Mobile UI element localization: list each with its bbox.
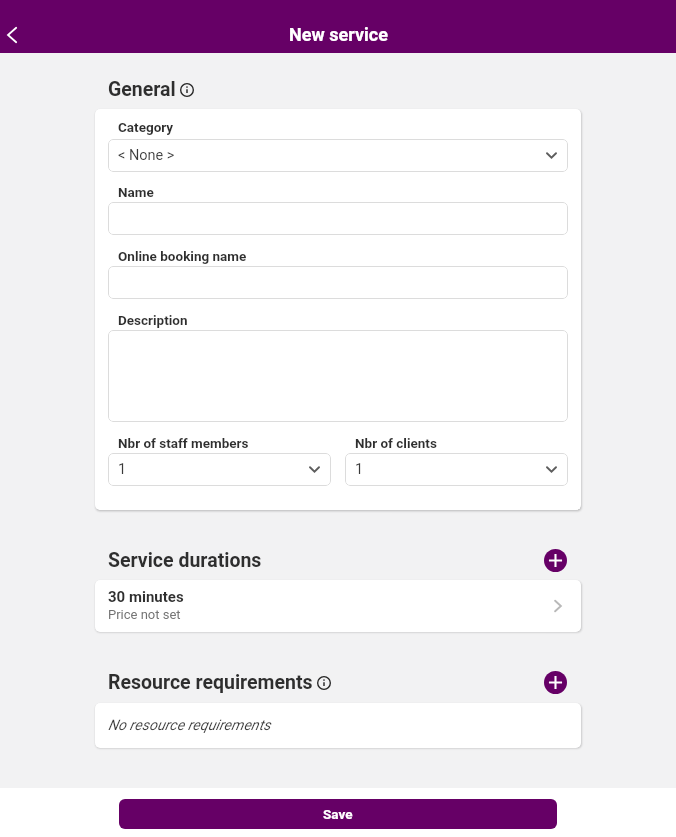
staticText: No resource requirements xyxy=(108,717,271,734)
button[interactable]: Add resource requirement xyxy=(544,671,567,694)
staticText: Description xyxy=(118,312,188,328)
staticText: 30 minutes xyxy=(108,588,184,606)
staticText: < None > xyxy=(118,147,175,164)
button[interactable]: 1 xyxy=(108,453,331,486)
staticText: Name xyxy=(118,184,154,200)
button[interactable]: Add service duration xyxy=(544,549,567,572)
button[interactable]: 30 minutes xyxy=(95,580,581,632)
staticText: New service xyxy=(289,24,388,45)
staticText: Nbr of staff members xyxy=(118,435,249,451)
staticText: 1 xyxy=(355,461,364,478)
staticText: General xyxy=(108,78,176,101)
staticText: 1 xyxy=(118,461,127,478)
staticText: Price not set xyxy=(108,607,181,622)
button[interactable] xyxy=(108,266,568,299)
staticText: Save xyxy=(323,806,353,822)
button[interactable]: < None > xyxy=(108,139,568,172)
button[interactable]: 1 xyxy=(345,453,568,486)
staticText: Online booking name xyxy=(118,248,247,264)
staticText: Service durations xyxy=(108,549,262,572)
button[interactable] xyxy=(108,330,568,422)
button[interactable] xyxy=(108,202,568,235)
button[interactable]: Save xyxy=(119,799,557,829)
staticText: Category xyxy=(118,119,174,135)
staticText: Resource requirements xyxy=(108,671,313,694)
button[interactable]: Back xyxy=(0,23,24,47)
staticText: Nbr of clients xyxy=(355,435,437,451)
